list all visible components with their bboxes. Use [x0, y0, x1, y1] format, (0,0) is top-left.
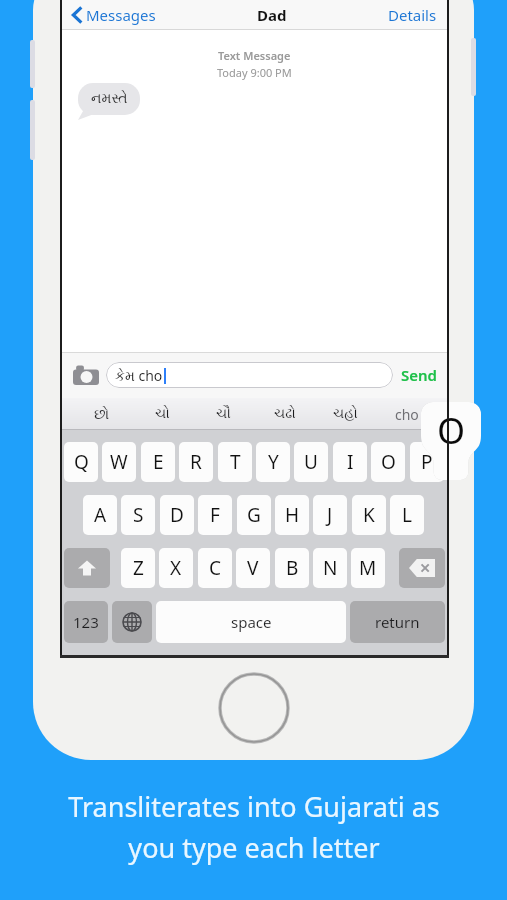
button[interactable]: Send: [399, 365, 439, 385]
staticText: F: [210, 502, 220, 528]
button[interactable]: O: [371, 442, 405, 482]
staticText: S: [133, 502, 144, 528]
button[interactable]: L: [390, 495, 424, 535]
button[interactable]: Backspace: [399, 548, 445, 588]
button[interactable]: P: [410, 442, 444, 482]
button[interactable]: ચહો: [315, 398, 376, 430]
staticText: ચો: [155, 407, 170, 421]
staticText: R: [190, 449, 202, 475]
staticText: I: [347, 449, 354, 475]
button[interactable]: X: [159, 548, 193, 588]
staticText: Q: [74, 449, 89, 475]
button[interactable]: ચઢો: [254, 398, 315, 430]
button[interactable]: ચો: [132, 398, 193, 430]
button[interactable]: J: [313, 495, 347, 535]
button[interactable]: V: [236, 548, 270, 588]
staticText: P: [421, 449, 433, 475]
staticText: B: [286, 555, 299, 581]
staticText: O: [437, 406, 466, 455]
staticText: T: [230, 449, 241, 475]
button[interactable]: Q: [64, 442, 98, 482]
button[interactable]: A: [83, 495, 117, 535]
staticText: C: [209, 555, 222, 581]
staticText: W: [110, 449, 128, 475]
button[interactable]: કેમ cho: [106, 362, 393, 388]
button[interactable]: Z: [121, 548, 155, 588]
staticText: 123: [73, 612, 99, 632]
staticText: U: [304, 449, 318, 475]
button[interactable]: M: [351, 548, 385, 588]
button[interactable]: Messages: [70, 5, 158, 25]
staticText: A: [94, 502, 107, 528]
staticText: ચઢો: [274, 407, 296, 421]
button[interactable]: ચૌ: [193, 398, 254, 430]
button[interactable]: return: [350, 601, 445, 643]
button[interactable]: Details: [386, 5, 439, 25]
staticText: કેમ cho: [115, 366, 163, 385]
staticText: Text Message: [218, 48, 291, 63]
button[interactable]: Shift: [64, 548, 110, 588]
staticText: cho: [395, 405, 419, 424]
button[interactable]: H: [275, 495, 309, 535]
staticText: H: [285, 502, 300, 528]
staticText: ચૌ: [216, 407, 231, 421]
staticText: J: [327, 502, 333, 528]
staticText: Z: [133, 555, 144, 581]
staticText: Today 9:00 PM: [217, 65, 292, 80]
staticText: M: [359, 555, 377, 581]
button[interactable]: space: [156, 601, 346, 643]
button[interactable]: cho: [376, 398, 437, 430]
button[interactable]: 123: [64, 601, 108, 643]
button[interactable]: B: [275, 548, 309, 588]
staticText: ચહો: [333, 407, 358, 421]
staticText: G: [247, 502, 261, 528]
staticText: Y: [268, 449, 279, 475]
staticText: return: [375, 612, 420, 632]
staticText: નમસ્તે: [91, 92, 128, 106]
staticText: X: [170, 555, 182, 581]
button[interactable]: W: [102, 442, 136, 482]
button[interactable]: D: [160, 495, 194, 535]
button[interactable]: K: [352, 495, 386, 535]
staticText: D: [170, 502, 184, 528]
staticText: છો: [94, 407, 110, 422]
button[interactable]: C: [198, 548, 232, 588]
staticText: E: [153, 449, 164, 475]
staticText: N: [323, 555, 338, 581]
staticText: Transliterates into Gujarati as: [68, 788, 440, 825]
staticText: you type each letter: [128, 829, 380, 866]
button[interactable]: N: [313, 548, 347, 588]
staticText: Dad: [257, 5, 287, 25]
staticText: K: [363, 502, 375, 528]
staticText: Messages: [86, 5, 156, 25]
button[interactable]: R: [179, 442, 213, 482]
button[interactable]: G: [237, 495, 271, 535]
button[interactable]: S: [121, 495, 155, 535]
button[interactable]: I: [333, 442, 367, 482]
staticText: V: [247, 555, 259, 581]
button[interactable]: Switch keyboard: [112, 601, 152, 643]
button[interactable]: E: [141, 442, 175, 482]
button[interactable]: છો: [72, 398, 132, 430]
staticText: Details: [388, 5, 437, 25]
staticText: L: [402, 502, 412, 528]
button[interactable]: Camera: [70, 359, 102, 391]
button[interactable]: Y: [256, 442, 290, 482]
staticText: Send: [401, 365, 437, 385]
button[interactable]: T: [218, 442, 252, 482]
button[interactable]: F: [198, 495, 232, 535]
button[interactable]: U: [294, 442, 328, 482]
staticText: O: [381, 449, 396, 475]
staticText: space: [231, 612, 272, 632]
